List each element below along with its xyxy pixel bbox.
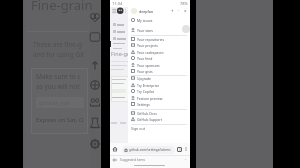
staticText: ˅ [178,9,180,14]
staticText: 78% [180,1,188,6]
button[interactable]: github.com/settings/tokens [122,146,175,154]
button[interactable]: Your feed [128,55,190,61]
staticText: Expires on Sat, O [36,116,84,124]
staticText: deepfan [139,9,154,14]
staticText: GitHub Support [137,117,162,122]
staticText: Sign out [131,126,145,131]
button[interactable]: Your repositories [128,36,190,42]
staticText: Make sure to c [36,72,81,81]
staticText: Upgrade [137,76,151,81]
button[interactable]: Your stars [128,27,190,33]
staticText: github.com/settings/tokens [129,148,171,152]
button[interactable]: deepfan [128,7,190,15]
staticText: My issues [137,18,153,23]
staticText: 3 [179,148,181,152]
button[interactable]: Try Enterprise [128,82,190,88]
button[interactable]: My issues [128,17,190,23]
staticText: Suggested items [120,158,145,162]
staticText: Your feed [137,56,153,61]
button[interactable]: Settings [128,101,190,107]
button[interactable]: Scroll [182,25,190,33]
staticText: and for using Git [33,50,85,59]
button[interactable]: More options [183,146,189,152]
button[interactable]: Sign out [128,125,190,131]
staticText: ˅ [185,158,187,163]
button[interactable]: Your projects [128,42,190,48]
button[interactable]: GitHub Support [128,116,190,122]
staticText: Try Enterprise [137,83,160,88]
other: Page actions [0,0,300,168]
staticText: Fine-grain [111,50,137,57]
staticText: Your codespaces [137,50,164,55]
staticText: Settings [137,102,150,107]
staticText: 11:04 [112,1,123,6]
button[interactable]: Suggested items [110,156,190,164]
staticText: GitHub Docs [137,111,157,116]
button[interactable]: Your codespaces [128,49,190,55]
staticText: Your stars [137,28,153,33]
staticText: Your projects [137,43,158,48]
button[interactable]: Try Copilot [128,88,190,94]
staticText: + [171,8,174,14]
button[interactable]: Tabs [177,147,182,152]
button[interactable]: Your sponsors [128,62,190,68]
staticText: Fine-grain [31,0,93,14]
button[interactable]: Home [112,146,118,152]
button[interactable]: Your gists [128,68,190,74]
staticText: Your repositories [137,37,165,42]
staticText: These are fine-g [33,40,83,49]
staticText: as you will not [36,82,80,91]
staticText: Your sponsors [137,63,160,68]
staticText: Try Copilot [137,89,155,94]
button[interactable]: Upgrade [128,75,190,81]
button[interactable]: GitHub Docs [128,110,190,116]
staticText: × [184,8,187,14]
staticText: Feature preview [137,96,163,101]
staticText: Your gists [137,69,153,74]
button[interactable]: Feature preview [128,95,190,101]
